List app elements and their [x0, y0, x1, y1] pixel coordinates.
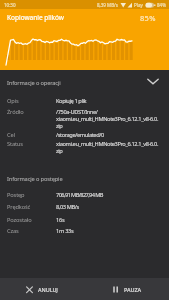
staticText: 84% [157, 2, 166, 8]
button[interactable]: ANULUJ [0, 278, 84, 300]
button[interactable]: PAUZA [84, 278, 169, 300]
staticText: 8,39 MB/s [97, 2, 118, 8]
button[interactable] [140, 73, 166, 89]
staticText: Kopiuję 1 plik [56, 97, 87, 105]
staticText: Prędkość [7, 203, 31, 211]
staticText: 1m 33s [56, 227, 74, 235]
staticText: PAUZA [124, 286, 142, 293]
staticText: 16s [56, 216, 65, 224]
staticText: Play [134, 2, 143, 8]
staticText: Informacje o operacji [7, 79, 61, 87]
staticText: 10:30 [4, 2, 16, 8]
staticText: Cel [7, 131, 15, 139]
staticText: Informacje o postępie [7, 175, 63, 183]
staticText: ANULUJ [38, 286, 58, 293]
staticText: Czas [7, 227, 19, 235]
staticText: Kopiowanie plików [7, 13, 64, 22]
staticText: 706,91 MB/827,94 MB [56, 191, 103, 199]
staticText: Status [7, 140, 23, 148]
staticText: Źródło [7, 108, 24, 116]
staticText: Pozostało [7, 216, 32, 224]
staticText: Postęp [7, 191, 25, 199]
staticText: 8,03 MB/s [56, 203, 79, 211]
staticText: 85% [140, 13, 156, 23]
staticText: Opis [7, 97, 19, 105]
staticText: /750a-UDST/Inne/ xiaomi.eu_multi_HMNote3… [56, 108, 168, 130]
staticText: /storage/emulated/0 [56, 131, 104, 139]
staticText: xiaomi.eu_multi_HMNote3Pro_6.12.1_v8-6.0… [56, 140, 168, 155]
